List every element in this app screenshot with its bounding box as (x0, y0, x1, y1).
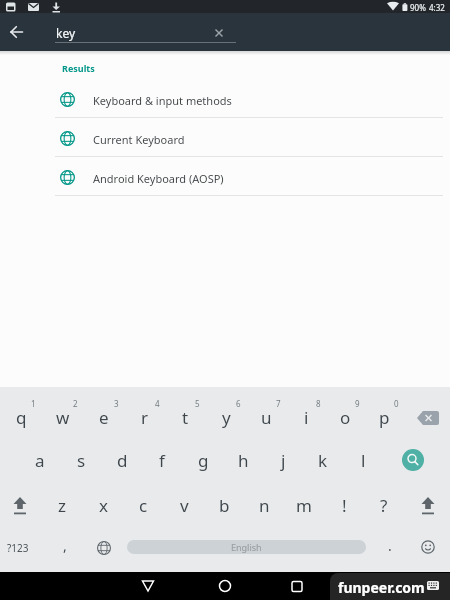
staticText: t (182, 406, 189, 429)
staticText: 7 (276, 398, 281, 409)
staticText: l (361, 449, 366, 472)
staticText: q (16, 406, 27, 429)
staticText: Android Keyboard (AOSP) (93, 171, 224, 186)
staticText: ? (380, 494, 388, 517)
staticText: 2 (73, 398, 78, 409)
button[interactable] (414, 492, 442, 522)
button[interactable]: d (104, 442, 140, 480)
button[interactable]: Android Keyboard (AOSP) (48, 158, 450, 196)
button[interactable]: ! (326, 487, 362, 525)
button[interactable] (2, 18, 30, 46)
staticText: funpeer.com (338, 578, 425, 597)
button[interactable]: i (288, 399, 324, 437)
button[interactable] (6, 492, 34, 522)
button[interactable]: u (248, 399, 284, 437)
button[interactable] (134, 572, 162, 600)
staticText: n (259, 494, 270, 517)
staticText: h (238, 449, 249, 472)
staticText: m (296, 494, 312, 517)
staticText: Keyboard & input methods (93, 93, 232, 108)
staticText: 8 (316, 398, 321, 409)
staticText: . (388, 536, 392, 555)
button[interactable]: r (127, 399, 163, 437)
button[interactable]: s (63, 442, 99, 480)
staticText: o (340, 406, 351, 429)
staticText: 1 (31, 398, 36, 409)
button[interactable] (402, 449, 424, 471)
button[interactable] (409, 405, 445, 431)
staticText: u (261, 406, 272, 429)
button[interactable]: p (366, 399, 402, 437)
staticText: z (58, 494, 66, 517)
staticText: ! (342, 494, 347, 517)
staticText: key (56, 25, 76, 41)
staticText: , (63, 536, 67, 555)
button[interactable]: m (286, 487, 322, 525)
staticText: b (219, 494, 230, 517)
button[interactable]: Keyboard & input methods (48, 80, 450, 118)
button[interactable]: English (127, 540, 366, 554)
staticText: 90% (410, 2, 426, 13)
staticText: s (77, 449, 86, 472)
button[interactable]: z (44, 487, 80, 525)
button[interactable]: j (265, 442, 301, 480)
staticText: e (99, 406, 109, 429)
button[interactable]: Current Keyboard (48, 119, 450, 157)
button[interactable] (209, 23, 229, 43)
staticText: d (117, 449, 128, 472)
button[interactable] (211, 572, 239, 600)
button[interactable]: c (125, 487, 161, 525)
button[interactable]: b (206, 487, 242, 525)
button[interactable]: l (345, 442, 381, 480)
button[interactable]: funpeer.com (330, 573, 450, 600)
staticText: a (35, 449, 45, 472)
button[interactable]: ?123 (2, 536, 34, 560)
button[interactable]: w (45, 399, 81, 437)
staticText: 5 (195, 398, 200, 409)
staticText: 0 (394, 398, 399, 409)
button[interactable]: g (185, 442, 221, 480)
button[interactable]: t (167, 399, 203, 437)
button[interactable]: k (305, 442, 341, 480)
button[interactable]: n (246, 487, 282, 525)
staticText: 6 (236, 398, 241, 409)
staticText: 4 (155, 398, 160, 409)
button[interactable] (92, 536, 116, 560)
staticText: Results (62, 62, 95, 74)
staticText: f (159, 449, 165, 472)
staticText: k (318, 449, 328, 472)
button[interactable]: o (327, 399, 363, 437)
staticText: Current Keyboard (93, 132, 185, 147)
button[interactable]: x (85, 487, 121, 525)
button[interactable]: ? (366, 487, 402, 525)
staticText: j (281, 449, 286, 472)
staticText: i (304, 406, 309, 429)
staticText: x (99, 494, 108, 517)
button[interactable] (283, 572, 311, 600)
staticText: English (231, 541, 262, 553)
staticText: r (141, 406, 149, 429)
staticText: y (222, 406, 231, 429)
button[interactable]: f (144, 442, 180, 480)
staticText: 3 (114, 398, 119, 409)
button[interactable]: y (208, 399, 244, 437)
staticText: 9 (355, 398, 360, 409)
staticText: g (198, 449, 209, 472)
staticText: v (180, 494, 189, 517)
staticText: p (379, 406, 390, 429)
staticText: w (56, 406, 70, 429)
button[interactable] (416, 535, 440, 559)
button[interactable]: v (166, 487, 202, 525)
button[interactable]: q (3, 399, 39, 437)
staticText: c (139, 494, 148, 517)
button[interactable]: e (86, 399, 122, 437)
button[interactable]: a (22, 442, 58, 480)
button[interactable]: h (225, 442, 261, 480)
staticText: 4:32 (429, 2, 445, 13)
staticText: ?123 (7, 541, 29, 555)
